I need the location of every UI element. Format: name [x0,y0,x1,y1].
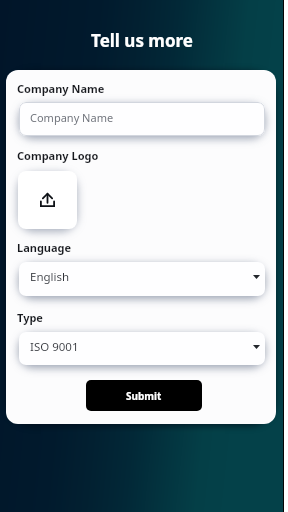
staticText: Submit [126,389,162,403]
staticText: English [30,269,70,285]
button[interactable]: Company Name [19,102,265,136]
staticText: Company Name [30,110,114,125]
staticText: Language [17,240,72,255]
staticText: Company Name [17,81,105,96]
staticText: ISO 9001 [30,339,79,355]
button[interactable]: English [19,262,265,296]
staticText: Company Logo [17,148,99,163]
button[interactable]: Submit [86,380,202,411]
button[interactable]: ISO 9001 [19,332,265,365]
button[interactable]: Upload company logo [18,171,77,229]
staticText: Type [17,310,43,325]
staticText: Tell us more [91,29,193,52]
